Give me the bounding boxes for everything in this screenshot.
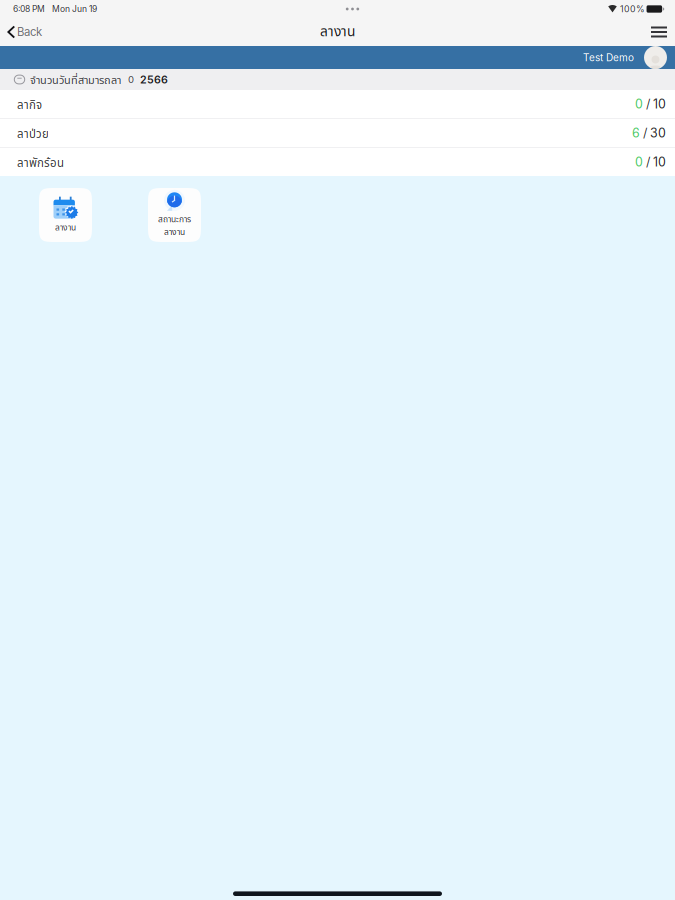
- staticText: จำนวนวันที่สามารถลา: [30, 72, 121, 89]
- staticText: /: [643, 154, 653, 169]
- button[interactable]: Menu: [639, 18, 675, 46]
- staticText: 6: [632, 125, 640, 140]
- staticText: 0: [635, 154, 643, 169]
- staticText: สถานะการ: [158, 213, 191, 226]
- button[interactable]: Back: [0, 18, 52, 46]
- button[interactable]: ลาพักร้อน: [0, 148, 675, 176]
- staticText: 10: [653, 96, 666, 111]
- staticText: /: [640, 125, 650, 140]
- button[interactable]: ลาป่วย: [0, 119, 675, 147]
- staticText: 6:08 PM: [13, 4, 45, 14]
- staticText: 0: [635, 96, 643, 111]
- staticText: ลาป่วย: [17, 126, 49, 143]
- staticText: 0: [128, 74, 134, 85]
- staticText: ลาพักร้อน: [17, 155, 64, 172]
- staticText: 10: [653, 154, 666, 169]
- staticText: Back: [17, 25, 42, 39]
- staticText: ลากิจ: [17, 97, 42, 114]
- staticText: /: [643, 96, 653, 111]
- staticText: Test Demo: [583, 51, 634, 64]
- staticText: ลางาน: [320, 22, 355, 42]
- staticText: 2566: [140, 73, 168, 86]
- staticText: ลางาน: [55, 222, 76, 234]
- staticText: 30: [650, 125, 666, 140]
- staticText: 100%: [620, 4, 645, 14]
- button[interactable]: ลากิจ: [0, 90, 675, 118]
- staticText: ลางาน: [164, 226, 185, 239]
- button[interactable]: ลางาน: [39, 188, 92, 242]
- staticText: Mon Jun 19: [52, 4, 97, 14]
- button[interactable]: สถานะการ: [148, 188, 201, 242]
- button[interactable]: Account: [634, 46, 675, 69]
